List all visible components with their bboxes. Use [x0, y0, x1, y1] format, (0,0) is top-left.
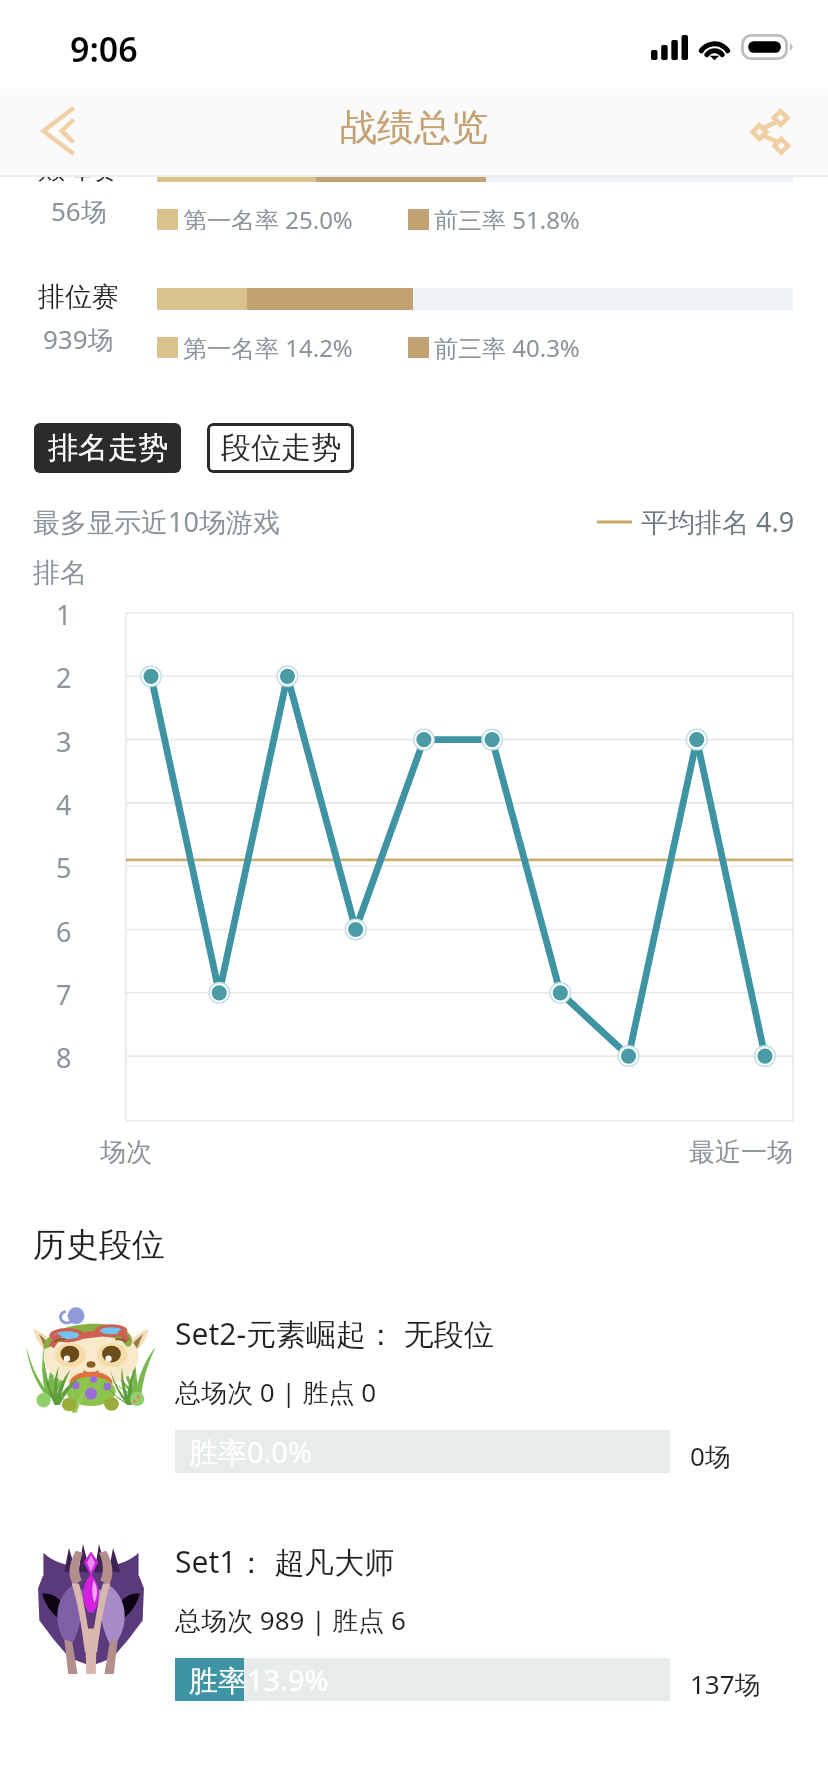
staticText: 总场次 0 | 胜点 0: [175, 1374, 377, 1410]
staticText: 第一名率 25.0%: [183, 203, 353, 230]
staticText: 排位赛: [38, 280, 119, 314]
staticText: 平均排名 4.9: [641, 503, 795, 540]
staticText: 最多显示近10场游戏: [33, 503, 280, 540]
staticText: 前三率 51.8%: [434, 203, 580, 230]
staticText: 排名走势: [48, 429, 168, 467]
staticText: 巅峰赛: [38, 152, 119, 186]
staticText: 历史段位: [33, 1224, 165, 1266]
staticText: 0场: [690, 1438, 731, 1474]
staticText: 9:06: [70, 26, 138, 72]
staticText: 2: [56, 659, 72, 696]
staticText: 939场: [43, 321, 114, 357]
button[interactable]: Back: [14, 87, 102, 175]
staticText: 8: [56, 1039, 72, 1076]
button[interactable]: 段位走势: [207, 423, 354, 473]
staticText: 前三率 40.3%: [434, 331, 580, 364]
staticText: 5: [56, 849, 72, 886]
staticText: 137场: [690, 1666, 761, 1702]
staticText: 56场: [51, 193, 107, 229]
staticText: 7: [56, 976, 72, 1013]
staticText: 1: [56, 596, 72, 633]
staticText: 段位走势: [221, 429, 341, 467]
staticText: 胜率13.9%: [189, 1660, 329, 1700]
button[interactable]: Share: [726, 87, 814, 175]
staticText: Set1： 超凡大师: [175, 1541, 395, 1582]
staticText: 3: [56, 723, 72, 760]
staticText: 排名: [33, 556, 87, 590]
staticText: 4: [56, 786, 72, 823]
button[interactable]: Set1： 超凡大师: [0, 1546, 828, 1711]
staticText: 战绩总览: [340, 104, 488, 151]
staticText: Set2-元素崛起： 无段位: [175, 1313, 494, 1354]
staticText: 总场次 989 | 胜点 6: [175, 1602, 406, 1638]
staticText: 第一名率 14.2%: [183, 331, 353, 364]
staticText: 场次: [100, 1136, 152, 1169]
button[interactable]: 排名走势: [34, 423, 181, 473]
staticText: 6: [56, 913, 72, 950]
staticText: 最近一场: [689, 1136, 793, 1169]
staticText: 胜率0.0%: [189, 1432, 313, 1472]
button[interactable]: Set2-元素崛起： 无段位: [0, 1318, 828, 1483]
